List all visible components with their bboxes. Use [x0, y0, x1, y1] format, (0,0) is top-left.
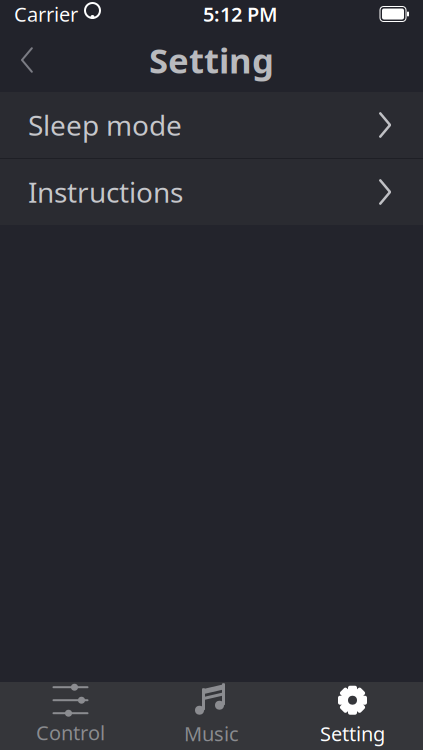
staticText: Setting	[320, 720, 385, 747]
staticText: Instructions	[28, 173, 183, 211]
button[interactable]: Setting	[282, 682, 423, 750]
button[interactable]: Sleep mode	[0, 92, 423, 158]
button[interactable]: Back	[0, 28, 54, 92]
staticText: 5:12 PM	[203, 1, 278, 27]
staticText: Setting	[149, 37, 274, 83]
staticText: Sleep mode	[28, 106, 182, 144]
staticText: Control	[36, 719, 105, 746]
button[interactable]: Control	[0, 682, 141, 750]
staticText: Carrier	[14, 1, 78, 27]
button[interactable]: Music	[141, 682, 282, 750]
staticText: Music	[184, 720, 239, 747]
button[interactable]: Instructions	[0, 159, 423, 225]
